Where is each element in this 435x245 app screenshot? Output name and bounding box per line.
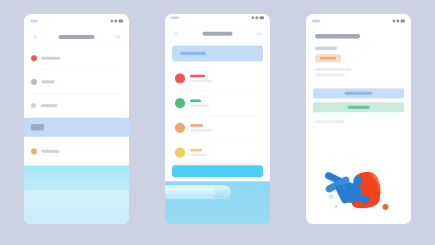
button[interactable]	[24, 118, 129, 137]
button[interactable]	[172, 165, 263, 177]
button[interactable]: More	[112, 31, 124, 42]
button[interactable]	[165, 91, 270, 115]
button[interactable]: More	[253, 28, 265, 39]
button[interactable]	[313, 102, 404, 112]
button[interactable]	[313, 88, 404, 98]
button[interactable]: Back	[29, 31, 41, 42]
button[interactable]	[165, 116, 270, 140]
button[interactable]	[24, 94, 129, 117]
button[interactable]: Back	[170, 28, 182, 39]
button[interactable]	[172, 45, 263, 61]
button[interactable]	[24, 70, 129, 93]
button[interactable]	[24, 140, 129, 163]
button[interactable]	[165, 66, 270, 90]
button[interactable]	[165, 141, 270, 165]
button[interactable]	[32, 166, 121, 178]
button[interactable]	[24, 47, 129, 70]
